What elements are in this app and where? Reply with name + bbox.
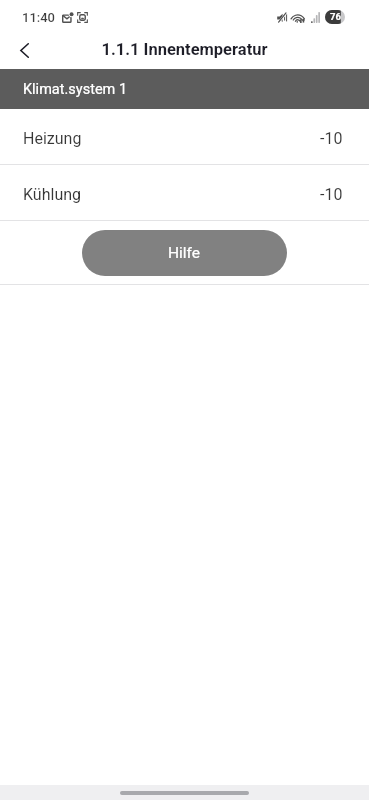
staticText: 76 — [330, 11, 341, 22]
button[interactable]: Hilfe — [82, 230, 287, 276]
staticText: 1.1.1 Innentemperatur — [101, 40, 268, 59]
button[interactable]: Zurück — [9, 36, 40, 65]
staticText: -10 — [320, 129, 343, 148]
button[interactable]: Heizung — [0, 109, 369, 164]
staticText: Klimat.system 1 — [23, 81, 128, 98]
staticText: 11:40 — [22, 10, 55, 25]
staticText: -10 — [320, 185, 343, 204]
staticText: Heizung — [23, 129, 82, 148]
button[interactable]: Kühlung — [0, 165, 369, 220]
staticText: Hilfe — [168, 244, 201, 262]
staticText: Kühlung — [23, 185, 82, 204]
